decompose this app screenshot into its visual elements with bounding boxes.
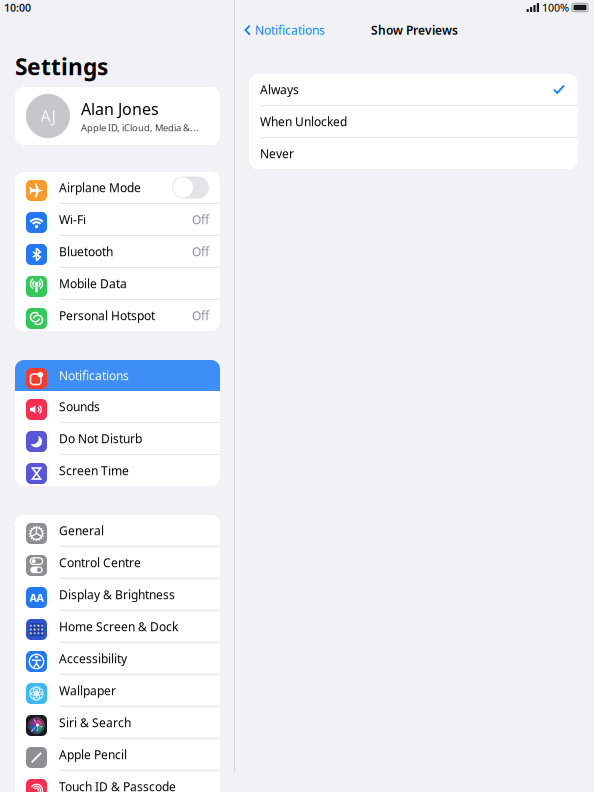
button[interactable]: AA (15, 579, 220, 610)
button[interactable]: Personal Hotspot (15, 300, 220, 331)
button[interactable]: General (15, 515, 220, 546)
staticText: Control Centre (59, 554, 141, 570)
button[interactable]: Home Screen & Dock (15, 611, 220, 642)
staticText: Off (192, 307, 209, 323)
staticText: Settings (15, 51, 108, 81)
button[interactable]: When Unlocked (249, 106, 578, 137)
button[interactable]: Screen Time (15, 455, 220, 486)
button[interactable]: Wi-Fi (15, 204, 220, 235)
button[interactable]: Notifications (235, 16, 325, 44)
button[interactable]: Notifications (15, 360, 220, 391)
staticText: Sounds (59, 398, 100, 414)
staticText: Display & Brightness (59, 586, 175, 602)
staticText: AA (29, 590, 43, 605)
staticText: When Unlocked (260, 113, 347, 129)
button[interactable]: Accessibility (15, 643, 220, 674)
button[interactable]: Airplane Mode (15, 172, 220, 203)
staticText: Always (260, 81, 299, 97)
staticText: Never (260, 145, 294, 161)
button[interactable]: Mobile Data (15, 268, 220, 299)
staticText: General (59, 522, 104, 538)
button[interactable]: Do Not Disturb (15, 423, 220, 454)
staticText: Screen Time (59, 462, 129, 478)
staticText: Off (192, 243, 209, 259)
staticText: Touch ID & Passcode (59, 778, 176, 792)
staticText: Notifications (255, 22, 325, 38)
staticText: Alan Jones (81, 98, 159, 119)
button[interactable]: Sounds (15, 391, 220, 422)
button[interactable]: Touch ID & Passcode (15, 771, 220, 792)
staticText: Notifications (59, 367, 129, 383)
button[interactable]: Siri & Search (15, 707, 220, 738)
staticText: 10:00 (4, 0, 31, 15)
staticText: Mobile Data (59, 275, 127, 291)
button[interactable]: Control Centre (15, 547, 220, 578)
button[interactable]: Bluetooth (15, 236, 220, 267)
button[interactable]: AJ (15, 87, 220, 145)
staticText: 100% (542, 0, 569, 15)
staticText: Apple Pencil (59, 746, 127, 762)
staticText: Accessibility (59, 650, 127, 666)
staticText: Do Not Disturb (59, 430, 142, 446)
staticText: Show Previews (371, 22, 458, 38)
button[interactable]: Apple Pencil (15, 739, 220, 770)
staticText: Siri & Search (59, 714, 131, 730)
staticText: Wallpaper (59, 682, 116, 698)
staticText: Home Screen & Dock (59, 618, 178, 634)
button[interactable]: Wallpaper (15, 675, 220, 706)
staticText: Personal Hotspot (59, 307, 155, 323)
staticText: AJ (40, 105, 55, 127)
button[interactable]: Always (249, 74, 578, 105)
button[interactable]: Never (249, 138, 578, 169)
staticText: Airplane Mode (59, 179, 141, 195)
staticText: Apple ID, iCloud, Media &... (81, 121, 199, 134)
staticText: Bluetooth (59, 243, 113, 259)
staticText: Wi-Fi (59, 211, 86, 227)
staticText: Off (192, 211, 209, 227)
